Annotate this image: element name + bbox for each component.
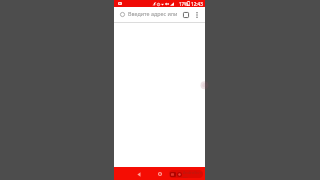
button[interactable]: Search or type web address [114, 6, 205, 22]
staticText: 12:43 [191, 1, 203, 7]
button[interactable]: Back [135, 170, 143, 178]
button[interactable]: Screen recorder [169, 170, 203, 178]
button[interactable]: Home [156, 170, 164, 178]
staticText: AndroScreen [183, 170, 202, 178]
button[interactable]: Tabs [181, 10, 190, 19]
staticText: 17% [179, 1, 188, 7]
staticText: Введите адрес или на [128, 10, 180, 17]
button[interactable]: More options [192, 10, 201, 19]
